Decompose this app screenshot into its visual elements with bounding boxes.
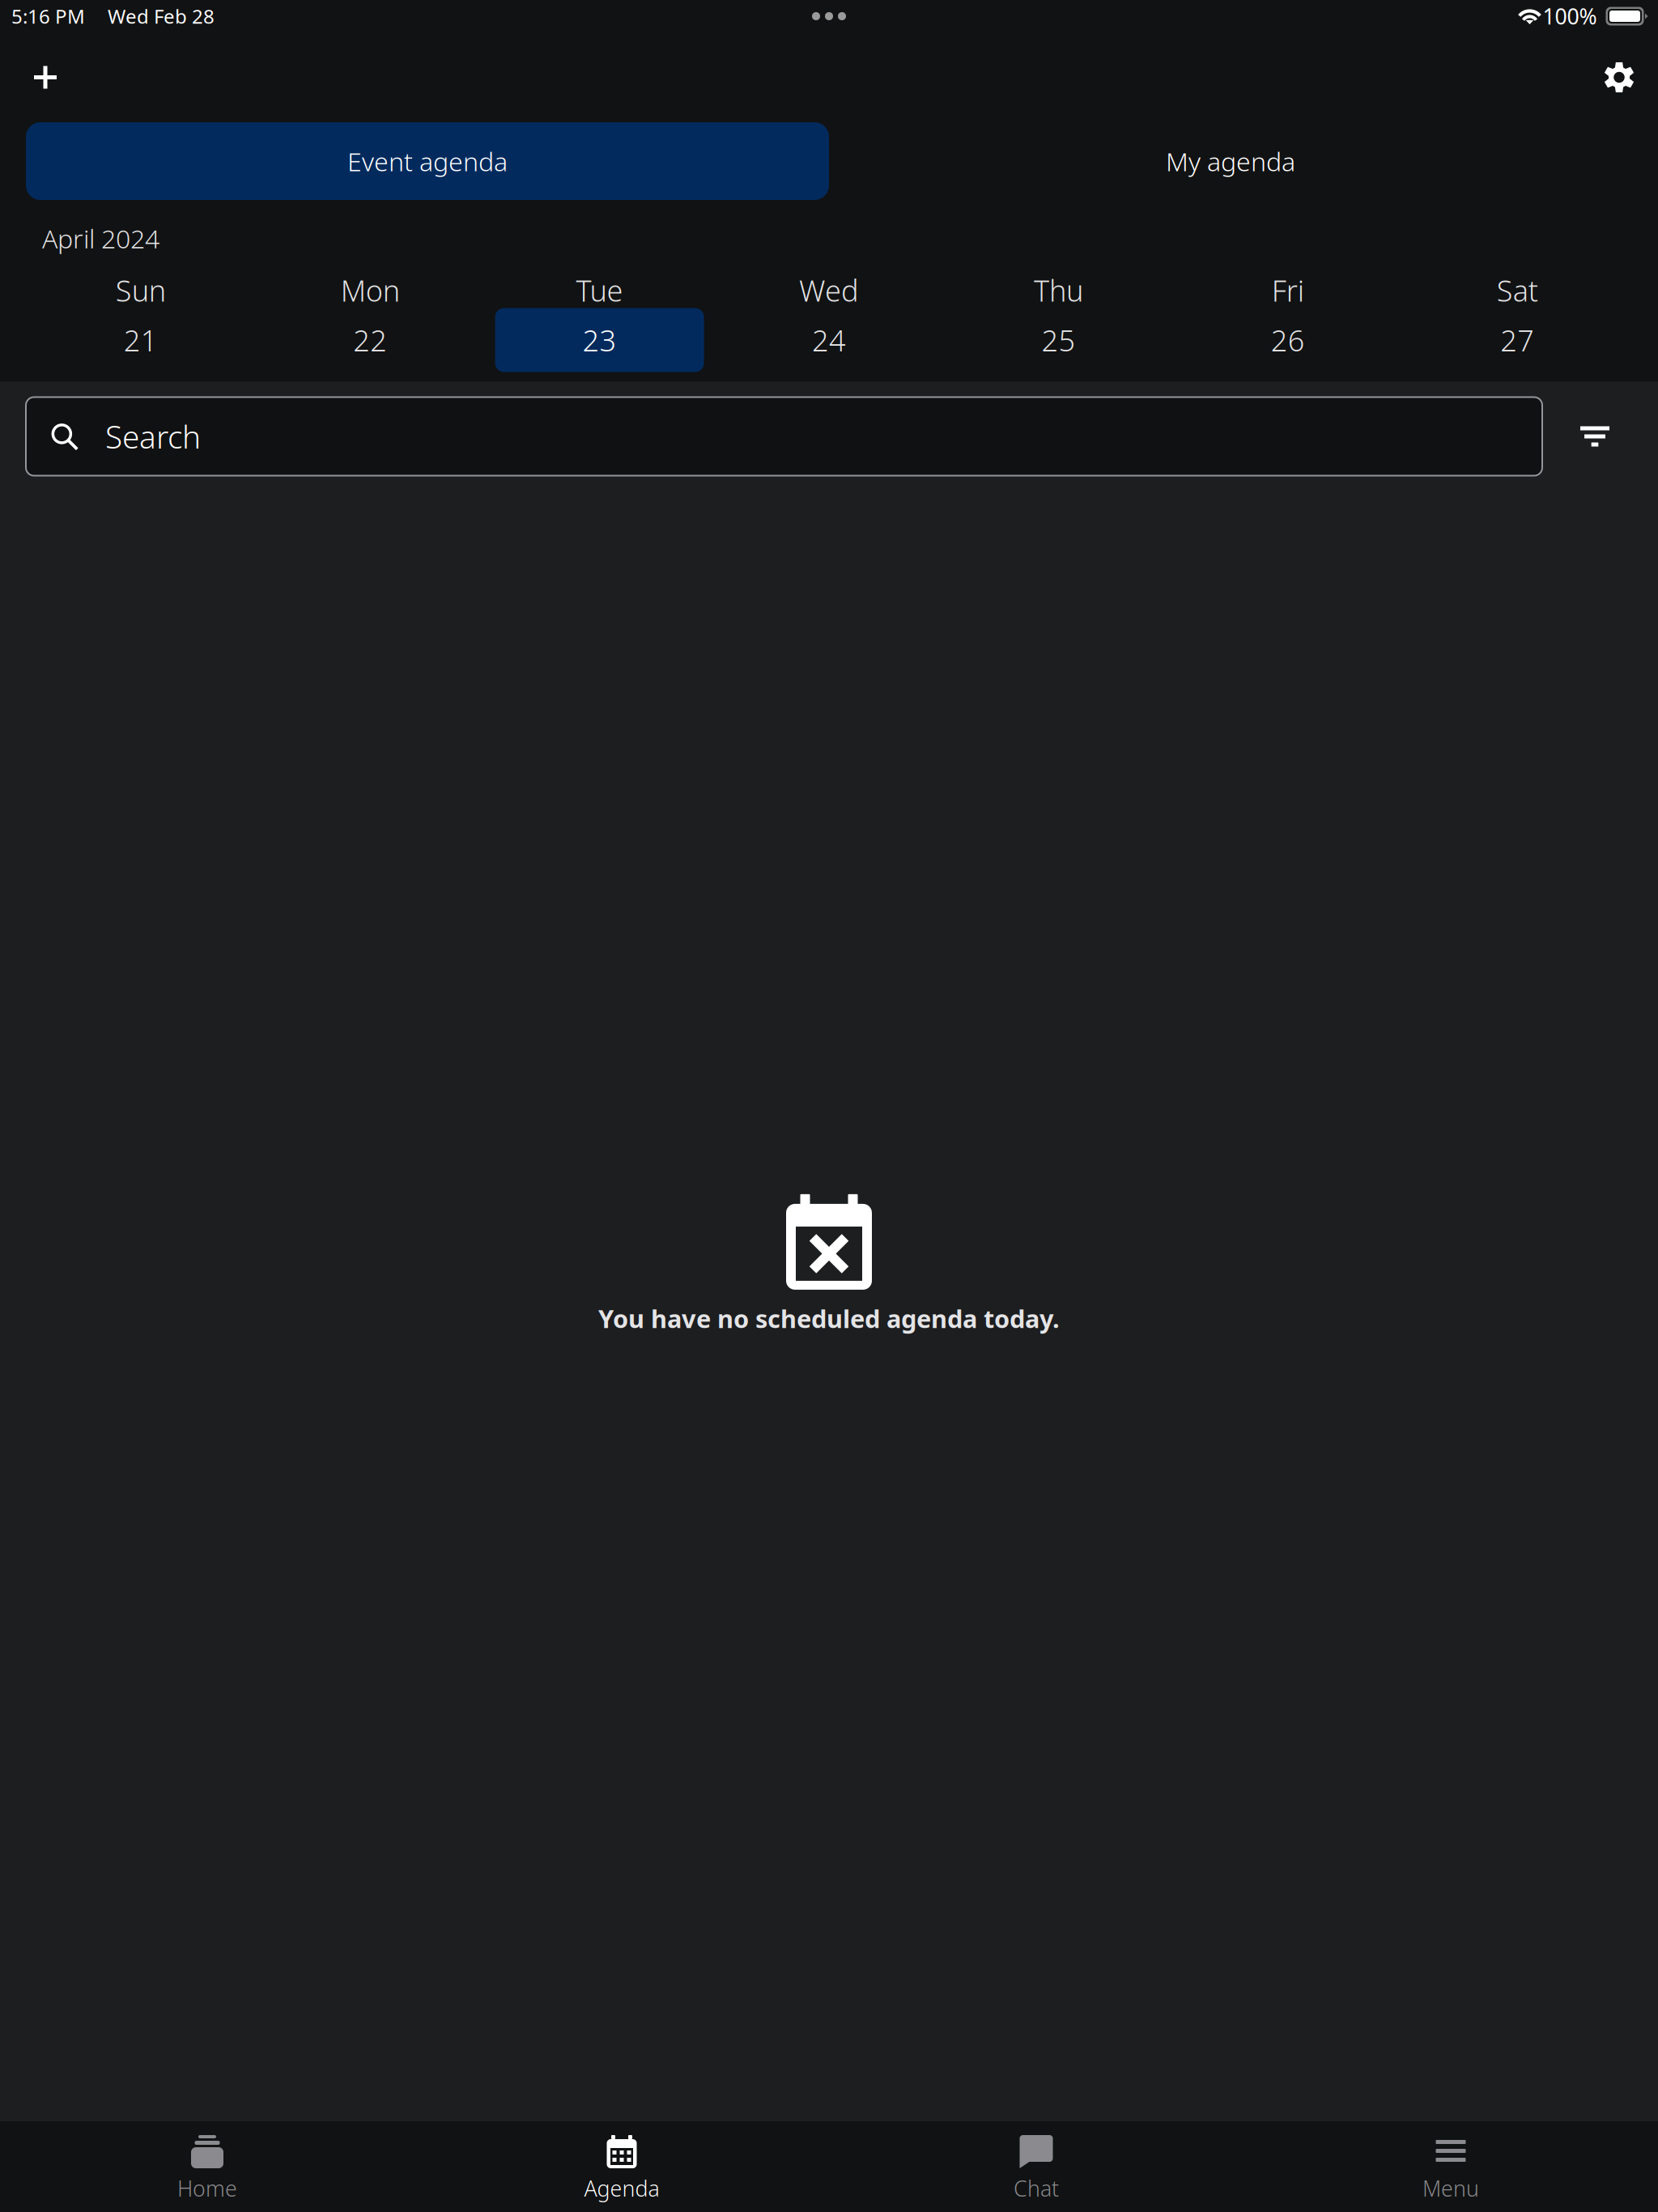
staticText: 100% [1543,2,1597,31]
staticText: Search [105,416,201,457]
staticText: Chat [1014,2174,1059,2203]
button[interactable]: Menu [1243,2121,1658,2212]
staticText: 25 [1041,321,1075,359]
button[interactable]: Home [0,2121,414,2212]
button[interactable]: Sat [1403,276,1632,372]
staticText: 24 [812,321,846,359]
button[interactable]: Event agenda [0,122,829,200]
staticText: 27 [1500,321,1534,359]
staticText: Mon [341,271,400,310]
button[interactable]: Agenda [414,2121,829,2212]
staticText: Wed Feb 28 [108,3,215,29]
button[interactable]: Settings [1585,32,1653,122]
staticText: 22 [353,321,387,359]
staticText: Menu [1422,2174,1479,2203]
staticText: Home [177,2174,237,2203]
staticText: You have no scheduled agenda today. [598,1302,1060,1335]
button[interactable]: Tue [485,276,714,372]
staticText: Thu [1034,271,1083,310]
staticText: 5:16 PM [11,3,85,29]
button[interactable]: Thu [944,276,1173,372]
button[interactable]: Add [11,32,79,122]
staticText: Fri [1272,271,1304,310]
staticText: 21 [124,321,158,359]
button[interactable]: Search [26,397,1542,476]
staticText: Sun [116,271,166,310]
button[interactable]: My agenda [829,122,1658,200]
button[interactable]: Wed [714,276,944,372]
button[interactable]: Mon [255,276,485,372]
staticText: Agenda [584,2174,659,2203]
staticText: 26 [1271,321,1305,359]
staticText: Sat [1497,271,1538,310]
button[interactable]: Filter [1558,397,1631,476]
staticText: Wed [799,271,859,310]
staticText: 23 [583,321,617,359]
staticText: My agenda [1166,144,1295,178]
staticText: Tue [576,271,623,310]
staticText: April 2024 [42,221,159,255]
button[interactable]: Sun [26,276,255,372]
button[interactable]: Chat [829,2121,1243,2212]
button[interactable]: Fri [1173,276,1403,372]
staticText: Event agenda [347,144,508,178]
